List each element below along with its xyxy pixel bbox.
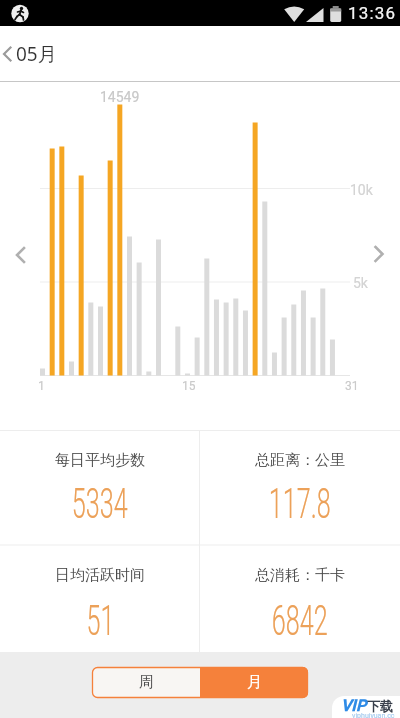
staticText: 周 bbox=[139, 673, 154, 692]
staticText: viphuiyuan.cc bbox=[352, 712, 395, 718]
staticText: 月 bbox=[247, 673, 262, 692]
staticText: 6842 bbox=[272, 596, 328, 645]
staticText: 10k bbox=[350, 182, 373, 198]
staticText: 31 bbox=[345, 379, 359, 393]
button[interactable]: 周 bbox=[92, 667, 200, 698]
staticText: 14549 bbox=[100, 89, 140, 105]
button[interactable]: VIP bbox=[332, 696, 400, 718]
staticText: 总消耗：千卡 bbox=[255, 566, 345, 585]
staticText: VIP bbox=[341, 696, 367, 715]
staticText: 5334 bbox=[72, 479, 128, 528]
staticText: 13:36 bbox=[348, 3, 397, 23]
staticText: 15 bbox=[182, 379, 196, 393]
staticText: 总距离：公里 bbox=[255, 451, 345, 470]
staticText: 日均活跃时间 bbox=[55, 566, 145, 585]
staticText: 51 bbox=[86, 596, 115, 645]
staticText: 117.8 bbox=[269, 479, 331, 528]
button[interactable]: 月 bbox=[200, 667, 308, 698]
button[interactable]: 05月 bbox=[0, 26, 57, 82]
staticText: 1 bbox=[38, 379, 45, 393]
staticText: 下载 bbox=[367, 698, 393, 714]
staticText: 5k bbox=[353, 275, 368, 291]
staticText: 每日平均步数 bbox=[55, 451, 145, 470]
staticText: 05月 bbox=[16, 41, 57, 67]
